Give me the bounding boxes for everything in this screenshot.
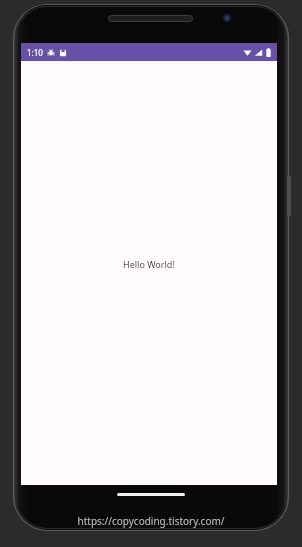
other: Debug xyxy=(47,49,55,57)
staticText: https://copycoding.tistory.com/ xyxy=(77,514,225,528)
other: Screenshot xyxy=(59,49,67,57)
other: Mobile signal xyxy=(254,48,263,57)
other: Battery xyxy=(266,48,271,57)
staticText: Hello World! xyxy=(123,258,175,270)
staticText: 1:10 xyxy=(27,47,43,58)
other: Wi-Fi xyxy=(243,48,252,57)
